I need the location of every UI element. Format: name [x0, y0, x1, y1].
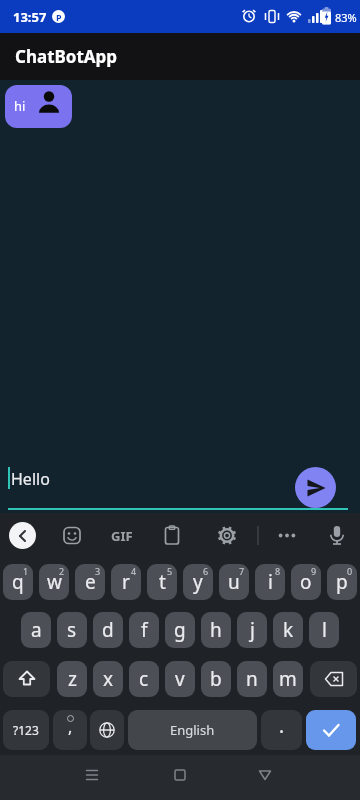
button[interactable]: .	[261, 710, 302, 750]
staticText: 0	[347, 565, 353, 577]
button[interactable]: a	[21, 612, 51, 648]
button[interactable]: c	[129, 661, 159, 697]
button[interactable]: hi	[5, 85, 72, 128]
staticText: 3	[95, 565, 101, 577]
staticText: u	[228, 569, 240, 595]
staticText: b	[210, 666, 222, 692]
staticText: 83%	[335, 10, 357, 25]
button[interactable]: ?123	[3, 710, 49, 750]
staticText: g	[174, 617, 186, 643]
staticText: 9	[311, 565, 317, 577]
button[interactable]: d	[93, 612, 123, 648]
staticText: hi	[14, 97, 26, 115]
staticText: y	[193, 569, 203, 595]
button[interactable]: z	[57, 661, 87, 697]
staticText: 7	[239, 565, 245, 577]
button[interactable]	[9, 522, 36, 549]
staticText: ChatBotApp	[15, 45, 118, 68]
staticText: d	[102, 617, 114, 643]
button[interactable]: f	[129, 612, 159, 648]
button[interactable]	[310, 661, 357, 697]
staticText: r	[122, 569, 130, 595]
staticText: x	[103, 666, 114, 692]
staticText: c	[139, 666, 149, 692]
button[interactable]: h	[201, 612, 231, 648]
staticText: p	[336, 569, 348, 595]
button[interactable]: ,	[53, 710, 87, 750]
staticText: q	[12, 569, 24, 595]
button[interactable]	[90, 710, 124, 750]
staticText: n	[246, 666, 258, 692]
button[interactable]	[120, 755, 240, 800]
staticText: English	[170, 721, 215, 739]
staticText: 5	[167, 565, 173, 577]
button[interactable]: i	[255, 564, 285, 600]
staticText: 1	[23, 565, 29, 577]
button[interactable]: k	[273, 612, 303, 648]
button[interactable]: y	[183, 564, 213, 600]
button[interactable]	[0, 755, 120, 800]
staticText: l	[322, 617, 327, 643]
button[interactable]	[3, 661, 50, 697]
staticText: f	[141, 617, 148, 643]
button[interactable]: l	[309, 612, 339, 648]
staticText: Hello	[11, 468, 50, 490]
button[interactable]: n	[237, 661, 267, 697]
staticText: GIF	[111, 527, 133, 545]
staticText: s	[67, 617, 77, 643]
button[interactable]: English	[128, 710, 257, 750]
button[interactable]	[240, 755, 360, 800]
button[interactable]: v	[165, 661, 195, 697]
button[interactable]: x	[93, 661, 123, 697]
staticText: 8	[275, 565, 281, 577]
button[interactable]: o	[291, 564, 321, 600]
button[interactable]: u	[219, 564, 249, 600]
staticText: 6	[203, 565, 209, 577]
staticText: .	[279, 713, 285, 739]
button[interactable]: j	[237, 612, 267, 648]
staticText: k	[283, 617, 294, 643]
button[interactable]: r	[111, 564, 141, 600]
staticText: P	[56, 11, 62, 23]
staticText: j	[250, 617, 255, 643]
staticText: ?123	[13, 722, 39, 738]
staticText: a	[31, 617, 42, 643]
button[interactable]: w	[39, 564, 69, 600]
staticText: ,	[68, 716, 73, 738]
staticText: m	[279, 666, 297, 692]
button[interactable]	[306, 710, 356, 750]
button[interactable]: s	[57, 612, 87, 648]
staticText: i	[268, 569, 273, 595]
button[interactable]: e	[75, 564, 105, 600]
button[interactable]: g	[165, 612, 195, 648]
staticText: w	[47, 569, 62, 595]
button[interactable]: t	[147, 564, 177, 600]
button[interactable]: b	[201, 661, 231, 697]
button[interactable]: m	[273, 661, 303, 697]
button[interactable]: q	[3, 564, 33, 600]
staticText: t	[159, 569, 166, 595]
staticText: 4	[131, 565, 137, 577]
staticText: 13:57	[13, 8, 47, 26]
staticText: 2	[59, 565, 65, 577]
staticText: h	[210, 617, 222, 643]
staticText: z	[68, 666, 77, 692]
button[interactable]: p	[327, 564, 357, 600]
staticText: o	[300, 569, 312, 595]
button[interactable]	[295, 467, 336, 508]
staticText: v	[175, 666, 185, 692]
staticText: e	[85, 569, 96, 595]
